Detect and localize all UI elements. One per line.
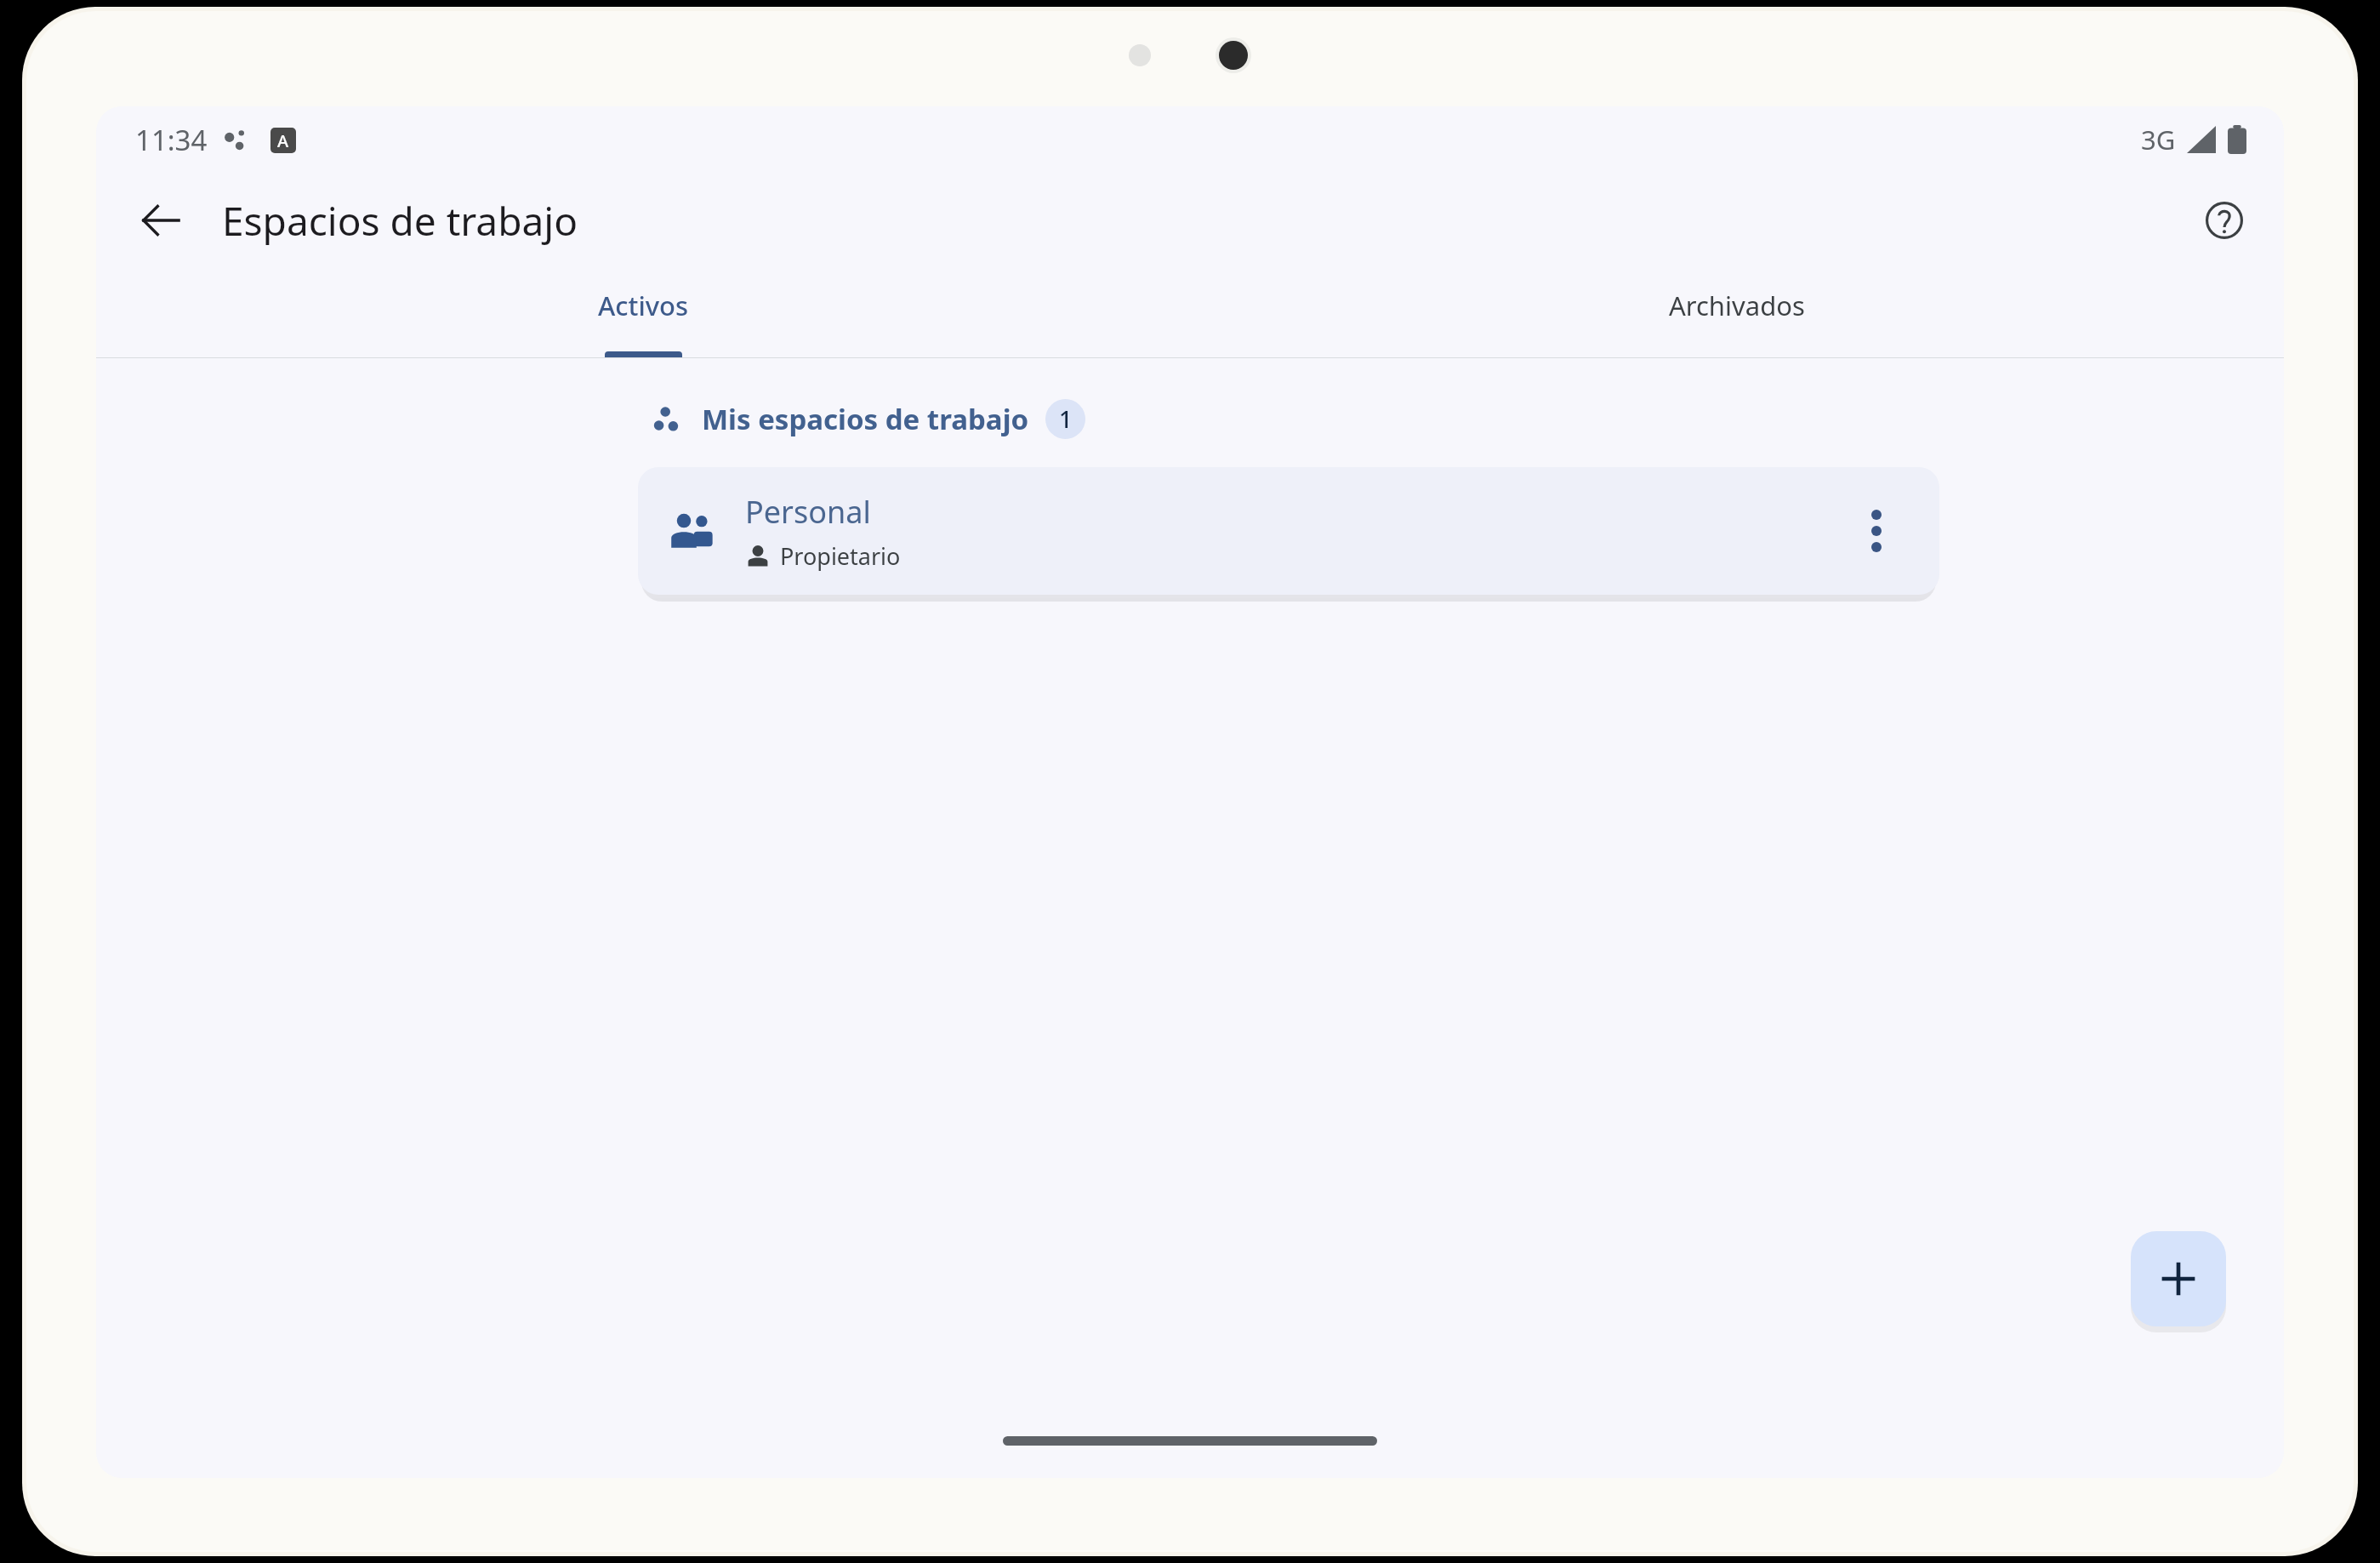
staticText: Mis espacios de trabajo <box>702 400 1029 438</box>
staticText: Personal <box>745 491 871 533</box>
button[interactable]: Activos <box>96 268 1190 357</box>
staticText: 11:34 <box>135 121 208 159</box>
staticText: 1 <box>1059 403 1073 435</box>
button[interactable]: Atrás <box>120 180 202 261</box>
button[interactable]: Crear espacio de trabajo <box>2131 1231 2226 1326</box>
staticText: Espacios de trabajo <box>222 194 578 248</box>
staticText: A <box>277 129 289 152</box>
staticText: 3G <box>2141 122 2176 157</box>
staticText: Archivados <box>1669 288 1805 323</box>
button[interactable]: Archivados <box>1190 268 2284 357</box>
staticText: Activos <box>598 288 689 323</box>
button[interactable]: Ayuda <box>2185 181 2263 260</box>
button[interactable]: Personal <box>638 467 1939 595</box>
staticText: Propietario <box>780 540 901 572</box>
button[interactable]: Más opciones <box>1836 490 1917 572</box>
